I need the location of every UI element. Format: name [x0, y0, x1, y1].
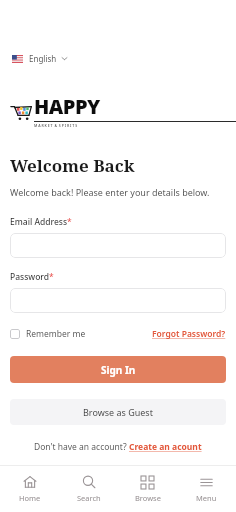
staticText: Email Address* — [10, 216, 72, 228]
button[interactable]: Browse — [118, 466, 177, 512]
button[interactable]: Remember me — [10, 326, 86, 342]
staticText: English — [29, 53, 57, 64]
button[interactable]: Search — [59, 466, 118, 512]
staticText: Create an acount — [129, 441, 202, 453]
staticText: M A R K E T & S P I R I T S — [34, 123, 78, 128]
button[interactable]: English — [10, 50, 70, 67]
button[interactable]: Don't have an account? — [30, 439, 206, 455]
staticText: Menu — [196, 493, 217, 503]
staticText: Don't have an account? — [34, 441, 129, 453]
button[interactable]: Browse as Guest — [10, 399, 226, 425]
staticText: Forgot Password? — [152, 328, 226, 340]
staticText: Home — [19, 493, 41, 503]
staticText: Browse — [135, 493, 161, 503]
button[interactable] — [10, 233, 226, 258]
staticText: HAPPY — [34, 93, 100, 120]
staticText: Search — [77, 493, 101, 503]
button[interactable]: Menu — [177, 466, 236, 512]
staticText: Welcome back! Please enter your details … — [10, 186, 210, 198]
staticText: Browse as Guest — [83, 406, 153, 418]
staticText: Welcome Back — [10, 154, 135, 177]
button[interactable] — [10, 288, 226, 313]
staticText: Sign In — [101, 363, 136, 377]
staticText: Remember me — [26, 328, 86, 340]
staticText: Password* — [10, 271, 54, 283]
button[interactable]: Sign In — [10, 356, 226, 383]
button[interactable]: Home — [0, 466, 59, 512]
button[interactable]: Forgot Password? — [152, 326, 226, 342]
